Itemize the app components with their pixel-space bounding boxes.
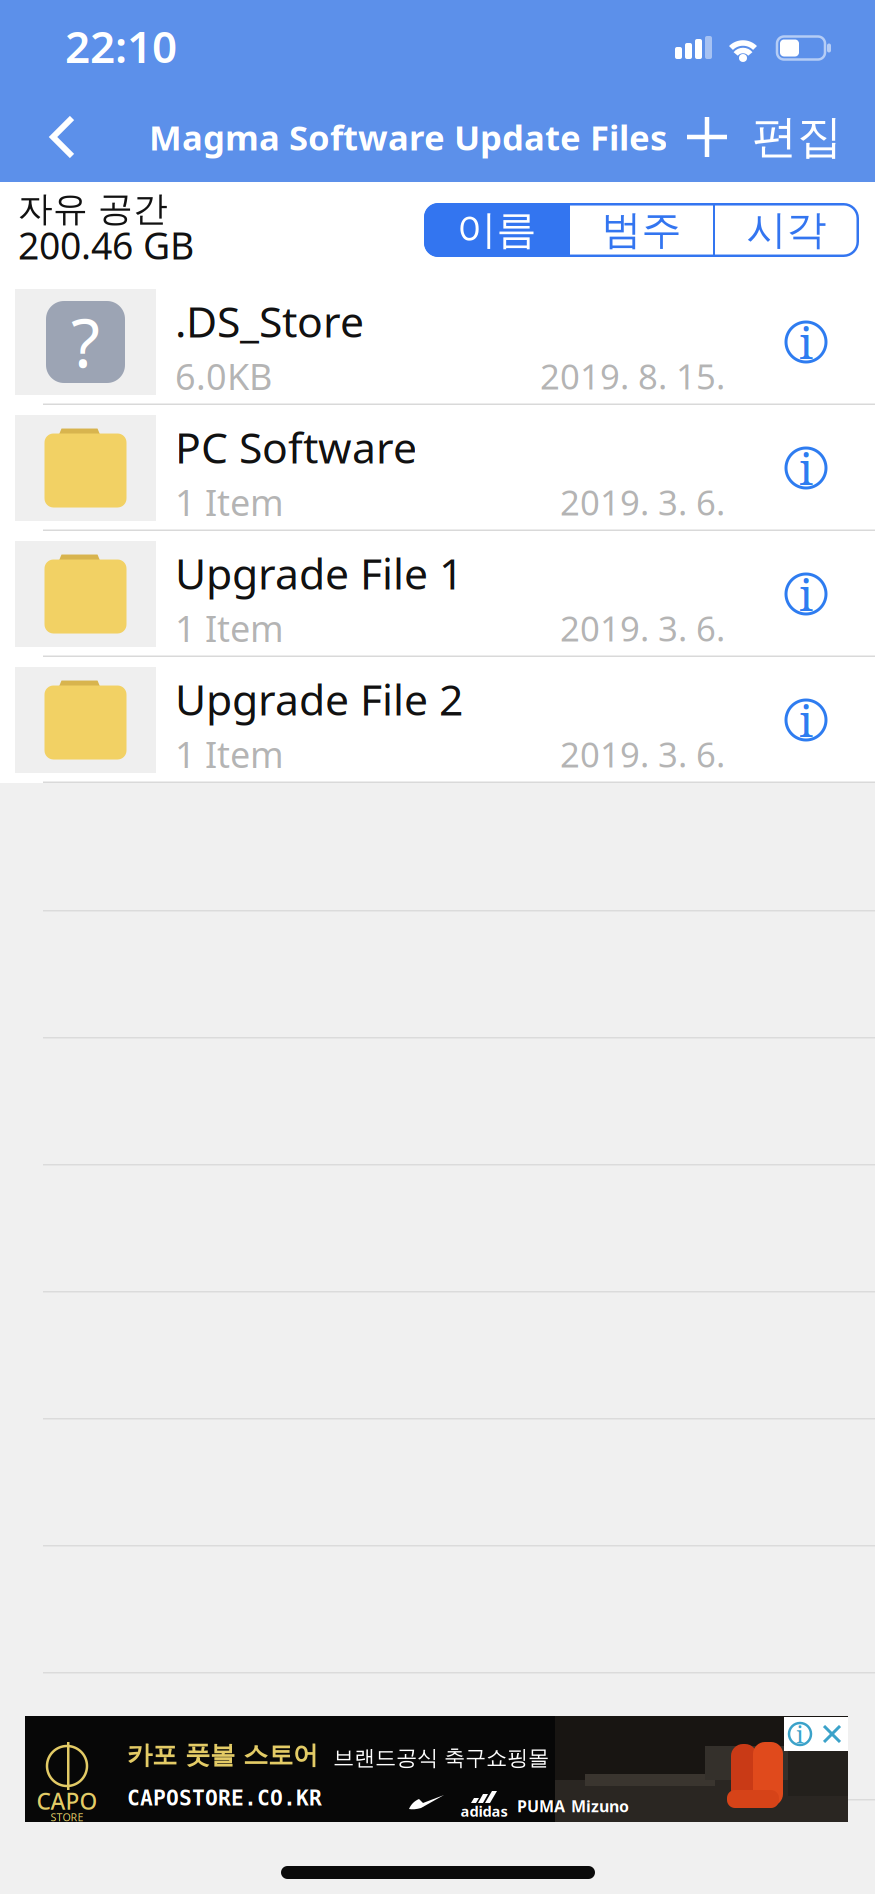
staticText: i [796, 1718, 804, 1750]
staticText: 이름 [456, 205, 536, 254]
staticText: CAPOSTORE.CO.KR [127, 1786, 322, 1810]
staticText: PC Software [175, 419, 417, 475]
staticText: 22:10 [65, 17, 177, 75]
staticText: 2019. 3. 6. [560, 605, 725, 651]
staticText: 시각 [746, 205, 826, 254]
staticText: i [799, 690, 813, 750]
staticText: 자유 공간 [18, 188, 168, 230]
staticText: 카포 풋볼 스토어 [127, 1739, 318, 1770]
staticText: Upgrade File 2 [175, 671, 463, 727]
button[interactable]: Back [48, 115, 78, 159]
button[interactable]: Info [784, 446, 828, 490]
staticText: 6.0KB [175, 352, 272, 400]
staticText: 2019. 3. 6. [560, 731, 725, 777]
staticText: i [799, 564, 813, 624]
button[interactable]: Add [685, 115, 729, 159]
staticText: 편집 [752, 109, 842, 165]
button[interactable]: 시각 [714, 203, 859, 257]
button[interactable]: Upgrade File 2 [0, 657, 875, 783]
staticText: 1 Item [175, 604, 284, 652]
button[interactable]: Info [784, 320, 828, 364]
staticText: i [799, 438, 813, 498]
staticText: 2019. 8. 15. [540, 353, 725, 399]
staticText: ? [71, 298, 100, 386]
staticText: 1 Item [175, 730, 284, 778]
staticText: 1 Item [175, 478, 284, 526]
button[interactable]: ? [0, 279, 875, 405]
button[interactable]: Ad: CAPO football store [25, 1716, 848, 1822]
staticText: i [799, 312, 813, 372]
button[interactable]: PC Software [0, 405, 875, 531]
staticText: Mizuno [571, 1795, 629, 1817]
button[interactable]: 이름 [424, 203, 569, 257]
staticText: adidas [460, 1801, 507, 1821]
staticText: 2019. 3. 6. [560, 479, 725, 525]
staticText: .DS_Store [175, 293, 364, 349]
button[interactable]: Info [784, 698, 828, 742]
button[interactable]: Ad information [785, 1717, 815, 1751]
staticText: 200.46 GB [18, 220, 194, 270]
staticText: STORE [50, 1810, 83, 1824]
staticText: 범주 [601, 205, 681, 254]
staticText: Upgrade File 1 [175, 545, 463, 601]
button[interactable]: Close ad [821, 1723, 843, 1745]
staticText: CAPO [36, 1786, 97, 1816]
button[interactable]: Info [784, 572, 828, 616]
button[interactable]: 범주 [569, 203, 714, 257]
button[interactable]: Upgrade File 1 [0, 531, 875, 657]
staticText: PUMA [517, 1795, 565, 1817]
staticText: 브랜드공식 축구쇼핑몰 [333, 1745, 549, 1771]
button[interactable]: 편집 [737, 115, 857, 159]
staticText: Magma Software Update Files [149, 114, 667, 160]
